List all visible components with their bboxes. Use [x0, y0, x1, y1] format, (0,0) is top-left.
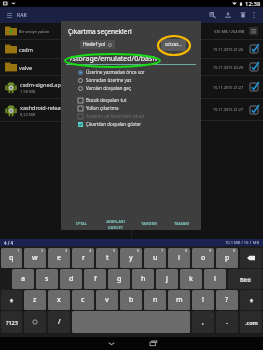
staticText: 4	[89, 248, 92, 253]
staticText: m	[176, 295, 183, 305]
button[interactable]: z	[24, 290, 46, 310]
button[interactable]: 15.11.2015 21:26	[132, 40, 263, 58]
button[interactable]: Delete	[237, 7, 249, 23]
button[interactable]: Varolan dosyaları geç	[78, 84, 132, 92]
button[interactable]: Sonradan üzerine yaz	[78, 76, 132, 84]
button[interactable]: j	[156, 269, 178, 289]
staticText: ?123	[6, 319, 18, 326]
staticText: csdm	[19, 46, 33, 53]
button[interactable]: d	[60, 269, 82, 289]
button[interactable]: v	[96, 290, 118, 310]
button[interactable]: YARDIM	[133, 218, 165, 230]
button[interactable]: 15.11.2015 20:29	[132, 59, 263, 75]
staticText: Bir seviye yukarı	[19, 29, 50, 34]
staticText: f	[94, 274, 97, 284]
button[interactable]: x	[48, 290, 70, 310]
button[interactable]: Extract	[222, 7, 234, 23]
button[interactable]: !	[192, 290, 214, 310]
staticText: a	[21, 274, 26, 284]
staticText: ,	[202, 317, 204, 327]
button[interactable]: s	[36, 269, 58, 289]
button[interactable]: Recent apps	[143, 337, 163, 350]
button[interactable]: l	[204, 269, 226, 289]
button[interactable]: i	[168, 248, 190, 268]
button[interactable]: 15.11.2015 21:27	[132, 76, 263, 98]
staticText: Bitti	[240, 276, 251, 283]
button[interactable]: c	[72, 290, 94, 310]
staticText: Bozuk dosyaları tut	[86, 97, 127, 103]
staticText: n	[153, 295, 158, 305]
button[interactable]: r	[72, 248, 94, 268]
button[interactable]: key	[240, 290, 262, 310]
button[interactable]: y	[120, 248, 142, 268]
button[interactable]: Yolları çıkartma	[78, 104, 119, 112]
button[interactable]: ?123	[1, 311, 22, 333]
button[interactable]: b	[120, 290, 142, 310]
button[interactable]: key	[24, 311, 46, 333]
button[interactable]: f	[84, 269, 106, 289]
button[interactable]: t	[96, 248, 118, 268]
staticText: h	[141, 274, 146, 284]
staticText: Çıkartma seçenekleri	[68, 27, 132, 36]
staticText: Çıkartılan dosyaları göster	[86, 121, 142, 127]
button[interactable]: o	[192, 248, 214, 268]
button[interactable]: g	[108, 269, 130, 289]
button[interactable]: h	[132, 269, 154, 289]
button[interactable]: 15.11.2015 21:27	[132, 99, 263, 120]
button[interactable]: Bir seviye yukarı	[0, 23, 131, 39]
button[interactable]: AYARLARI KAYDET	[97, 218, 133, 230]
button[interactable]: k	[180, 269, 202, 289]
button[interactable]: xashdroid-release.	[0, 99, 131, 121]
staticText: Arşivleri alt klasörlere çıkart	[86, 113, 145, 119]
button[interactable]: İPTAL	[65, 218, 97, 230]
staticText: i	[178, 253, 180, 263]
staticText: 6	[137, 248, 140, 253]
button[interactable]: /	[48, 311, 70, 333]
button[interactable]: ,	[192, 311, 214, 333]
staticText: y	[129, 253, 133, 263]
button[interactable]: TAMAM	[165, 218, 197, 230]
staticText: Yolları çıkartma	[86, 105, 119, 111]
staticText: Varolan dosyaları geç	[86, 85, 132, 91]
button[interactable]: w	[24, 248, 46, 268]
button[interactable]: q	[1, 248, 22, 268]
button[interactable]: csdm-signed.apk	[0, 76, 131, 98]
button[interactable]: ?	[216, 290, 238, 310]
staticText: 15.11.2015 21:26	[213, 47, 244, 52]
button[interactable]: key	[240, 248, 262, 268]
button[interactable]: key	[1, 290, 22, 310]
button[interactable]: Bozuk dosyaları tut	[78, 96, 127, 104]
button[interactable]: More options	[249, 7, 259, 23]
staticText: u	[153, 253, 158, 263]
button[interactable]: m	[168, 290, 190, 310]
button[interactable]: Hide keyboard	[101, 337, 121, 350]
button[interactable]: Add files	[207, 7, 219, 23]
staticText: k	[189, 274, 193, 284]
button[interactable]: Navigation menu	[3, 7, 16, 23]
button[interactable]: csdm	[0, 40, 131, 58]
button[interactable]: a	[12, 269, 34, 289]
button[interactable]: u	[144, 248, 166, 268]
staticText: 0	[233, 248, 236, 253]
button[interactable]: e	[48, 248, 70, 268]
button[interactable]: .	[216, 311, 238, 333]
staticText: -	[234, 311, 236, 316]
button[interactable]: p	[216, 248, 238, 268]
button[interactable]: .com	[240, 311, 262, 333]
staticText: Sonradan üzerine yaz	[86, 77, 132, 83]
staticText: _	[210, 311, 212, 316]
button[interactable]: Çıkartılan dosyaları göster	[78, 120, 142, 128]
button[interactable]: n	[144, 290, 166, 310]
button[interactable]: List options	[249, 27, 258, 35]
staticText: :	[66, 311, 68, 316]
staticText: 10.1 MB / 10.1 MB	[225, 240, 259, 245]
button[interactable]: Üzerine yazmadan önce sor	[78, 68, 145, 76]
button[interactable]: Arşivleri alt klasörlere çıkart	[78, 112, 145, 120]
button[interactable]: valve	[0, 59, 131, 75]
staticText: 4 / 4	[4, 240, 14, 246]
button[interactable]: GÖZAT...	[161, 39, 186, 51]
staticText: !	[202, 295, 204, 305]
button[interactable]: Bitti	[228, 269, 262, 289]
button[interactable]: Hedef yol	[80, 40, 115, 49]
